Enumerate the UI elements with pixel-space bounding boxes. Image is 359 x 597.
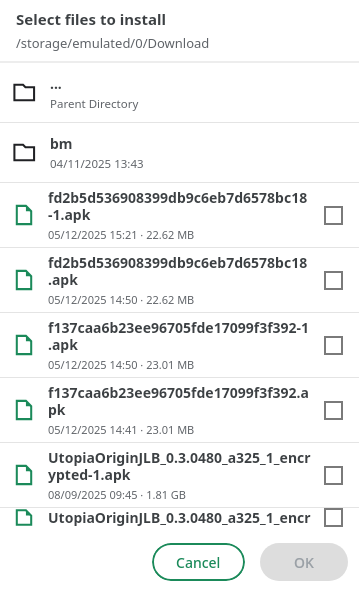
- staticText: /storage/emulated/0/Download: [16, 34, 210, 52]
- staticText: UtopiaOriginJLB_0.3.0480_a325_1_encrypte…: [48, 508, 311, 527]
- button[interactable]: fd2b5d536908399db9c6eb7d6578bc18.apk: [0, 248, 359, 312]
- staticText: 04/11/2025 13:43: [50, 156, 144, 172]
- button[interactable]: Select file: [315, 262, 351, 298]
- staticText: f137caa6b23ee96705fde17099f3f392.apk: [48, 383, 311, 419]
- staticText: 05/12/2025 14:50 · 23.01 MB: [48, 357, 195, 372]
- staticText: fd2b5d536908399db9c6eb7d6578bc18-1.apk: [48, 188, 311, 224]
- staticText: UtopiaOriginJLB_0.3.0480_a325_1_encrypte…: [48, 448, 311, 484]
- button[interactable]: ...: [0, 63, 359, 122]
- staticText: 08/09/2025 09:45 · 1.81 GB: [48, 487, 187, 502]
- staticText: bm: [50, 134, 73, 153]
- button[interactable]: Select file: [315, 327, 351, 363]
- staticText: ...: [50, 74, 62, 93]
- button[interactable]: Cancel: [152, 543, 245, 581]
- staticText: fd2b5d536908399db9c6eb7d6578bc18.apk: [48, 253, 311, 289]
- button[interactable]: f137caa6b23ee96705fde17099f3f392.apk: [0, 378, 359, 442]
- button[interactable]: UtopiaOriginJLB_0.3.0480_a325_1_encrypte…: [0, 443, 359, 507]
- staticText: Parent Directory: [50, 96, 139, 112]
- button[interactable]: UtopiaOriginJLB_0.3.0480_a325_1_encrypte…: [0, 508, 359, 527]
- staticText: f137caa6b23ee96705fde17099f3f392-1.apk: [48, 318, 311, 354]
- button[interactable]: fd2b5d536908399db9c6eb7d6578bc18-1.apk: [0, 183, 359, 247]
- button[interactable]: f137caa6b23ee96705fde17099f3f392-1.apk: [0, 313, 359, 377]
- button[interactable]: Select file: [315, 457, 351, 493]
- button[interactable]: Select file: [315, 392, 351, 428]
- button[interactable]: bm: [0, 123, 359, 182]
- staticText: 05/12/2025 14:41 · 23.01 MB: [48, 422, 195, 437]
- button[interactable]: Select file: [315, 197, 351, 233]
- button[interactable]: Select file: [315, 508, 351, 527]
- staticText: Select files to install: [16, 9, 166, 29]
- staticText: 05/12/2025 15:21 · 22.62 MB: [48, 227, 195, 242]
- staticText: OK: [294, 553, 314, 572]
- staticText: 05/12/2025 14:50 · 22.62 MB: [48, 292, 195, 307]
- staticText: Cancel: [176, 553, 221, 572]
- button[interactable]: OK: [260, 543, 348, 581]
